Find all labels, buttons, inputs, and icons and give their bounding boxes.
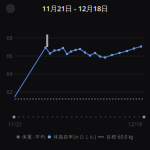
staticText: 11月21日 - 12月18日 [42,3,108,13]
staticText: 11/21 [8,121,22,128]
staticText: 64 [6,70,12,78]
staticText: 12/18 [128,121,142,128]
button[interactable]: Profile [0,1,15,16]
staticText: 68 [6,34,12,42]
staticText: 目標 60.0 kg [106,134,133,140]
staticText: 66 [6,52,12,60]
staticText: 62 [6,88,12,96]
staticText: 体重 - 平均 [22,134,45,140]
staticText: 体脂肪率(カロミル) [53,134,95,140]
